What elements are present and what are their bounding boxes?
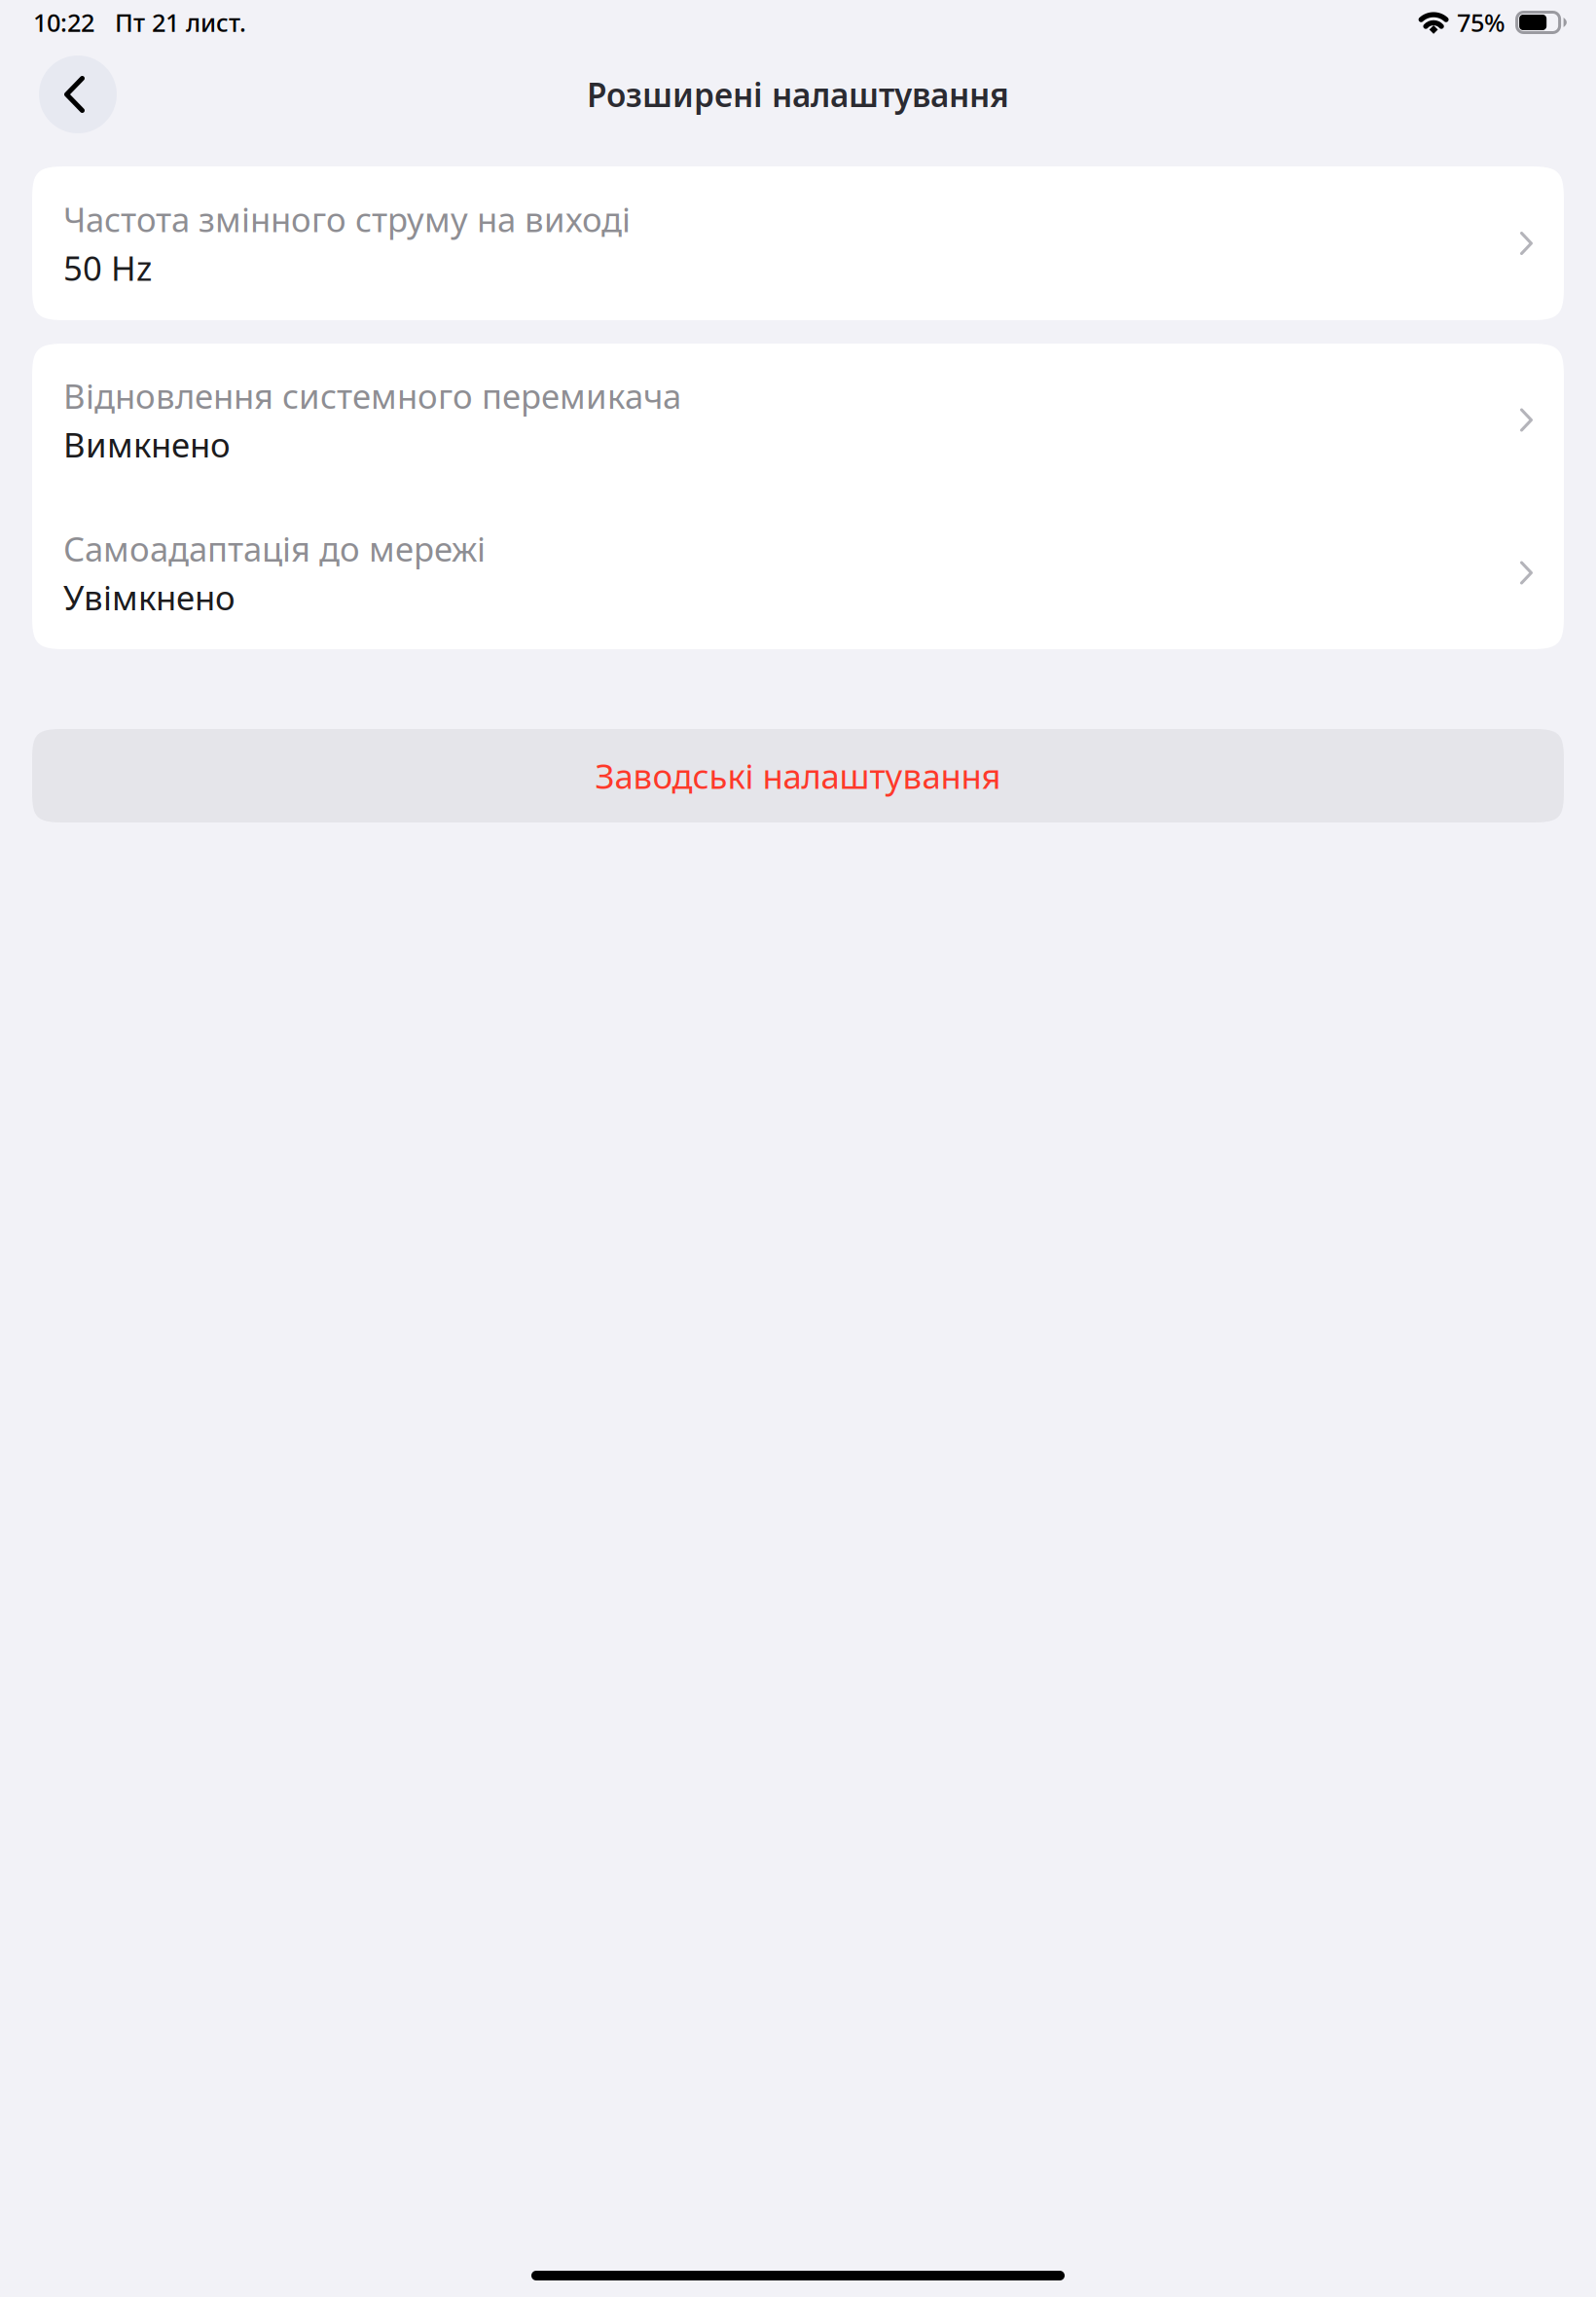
staticText: 50 Hz — [63, 245, 152, 290]
staticText: 10:22 Пт 21 лист. — [33, 6, 246, 39]
button[interactable]: Заводські налаштування — [32, 729, 1564, 822]
button[interactable]: Самоадаптація до мережі — [32, 496, 1564, 649]
staticText: Частота змінного струму на виході — [63, 197, 631, 241]
button[interactable]: Назад — [39, 55, 117, 133]
staticText: Розширені налаштування — [587, 73, 1009, 116]
staticText: Увімкнено — [63, 575, 236, 620]
staticText: Вимкнено — [63, 422, 231, 467]
staticText: Відновлення системного перемикача — [63, 373, 681, 418]
button[interactable]: Відновлення системного перемикача — [32, 344, 1564, 496]
staticText: Самоадаптація до мережі — [63, 526, 486, 571]
button[interactable]: Частота змінного струму на виході — [32, 166, 1564, 320]
staticText: Заводські налаштування — [595, 753, 1001, 798]
staticText: 75% — [1457, 6, 1506, 39]
